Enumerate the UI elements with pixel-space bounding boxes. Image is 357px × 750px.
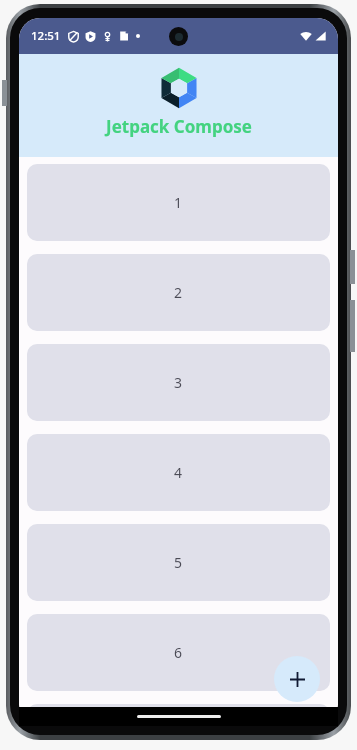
button[interactable]: 6 — [27, 614, 330, 691]
button[interactable]: 1 — [27, 164, 330, 241]
button[interactable]: 5 — [27, 524, 330, 601]
staticText: 5 — [174, 553, 183, 572]
button[interactable]: Add — [274, 656, 320, 702]
staticText: 4 — [174, 463, 183, 482]
staticText: 1 — [174, 193, 183, 212]
button[interactable]: 4 — [27, 434, 330, 511]
staticText: 2 — [174, 283, 183, 302]
button[interactable]: 7 — [27, 704, 330, 726]
staticText: Jetpack Compose — [106, 115, 252, 138]
staticText: 12:51 — [31, 28, 61, 44]
button[interactable]: 3 — [27, 344, 330, 421]
staticText: 3 — [174, 373, 183, 392]
button[interactable]: 2 — [27, 254, 330, 331]
staticText: 6 — [174, 643, 183, 662]
staticText: 7 — [174, 706, 183, 725]
